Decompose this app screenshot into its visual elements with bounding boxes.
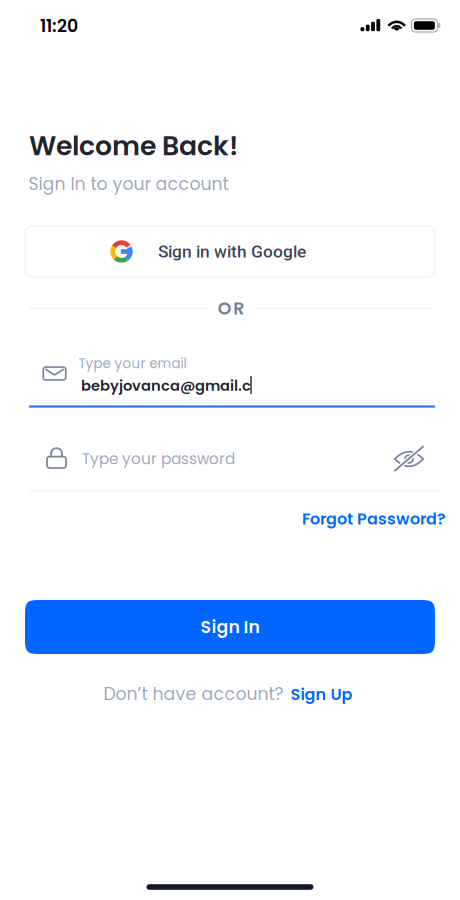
staticText: Type your password [82, 448, 235, 470]
staticText: 11:20 [40, 14, 78, 38]
button[interactable]: Sign in with Google [25, 226, 435, 277]
staticText: Type your email [78, 354, 186, 373]
staticText: OR [218, 296, 244, 321]
staticText: Sign Up [290, 683, 352, 706]
staticText: Forgot Password? [302, 508, 446, 530]
staticText: Sign In to your account [28, 172, 228, 196]
staticText: Sign in with Google [158, 241, 306, 262]
staticText: Don’t have account? [103, 682, 283, 706]
button[interactable]: Forgot Password? [300, 503, 448, 535]
button[interactable]: Show password [387, 438, 431, 478]
staticText: Sign In [200, 615, 259, 639]
button[interactable]: Sign In [25, 600, 435, 654]
button[interactable]: Sign Up [290, 683, 352, 706]
staticText: bebyjovanca@gmail.c [81, 375, 251, 396]
staticText: Welcome Back! [29, 127, 238, 165]
